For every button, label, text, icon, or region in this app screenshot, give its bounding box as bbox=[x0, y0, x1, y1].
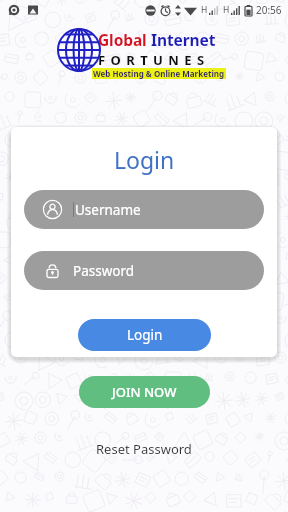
button[interactable]: Login bbox=[78, 319, 211, 351]
staticText: 20:56 bbox=[256, 3, 282, 17]
button[interactable]: Password bbox=[24, 251, 264, 290]
staticText: Login bbox=[127, 326, 163, 344]
staticText: Login bbox=[114, 144, 175, 175]
staticText: Web Hosting & Online Marketing bbox=[93, 68, 225, 79]
staticText: Reset Password bbox=[96, 440, 192, 458]
staticText: Username bbox=[75, 201, 141, 219]
staticText: FORTUNES bbox=[98, 51, 210, 69]
staticText: Internet bbox=[151, 29, 216, 50]
button[interactable]: JOIN NOW bbox=[79, 376, 210, 408]
button[interactable]: Username bbox=[24, 190, 264, 229]
staticText: Global bbox=[98, 29, 147, 50]
button[interactable]: Reset Password bbox=[88, 436, 200, 462]
staticText: H bbox=[223, 4, 230, 16]
staticText: JOIN NOW bbox=[112, 383, 177, 401]
staticText: Password bbox=[73, 262, 135, 280]
staticText: H bbox=[201, 4, 208, 16]
